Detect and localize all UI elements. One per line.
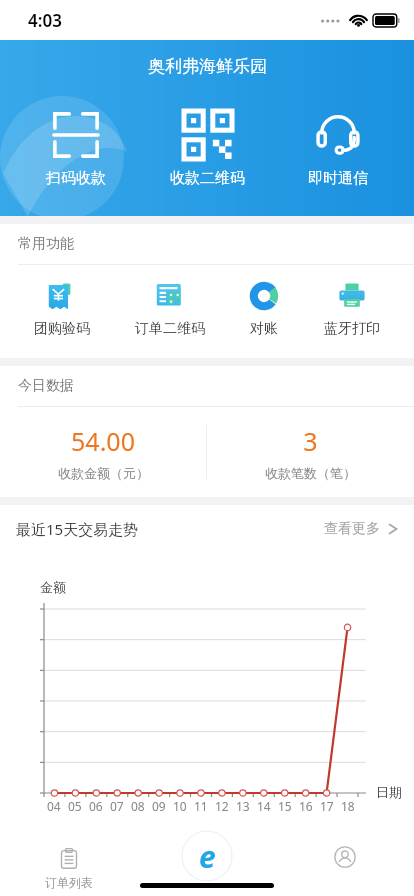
button[interactable]: 3 <box>207 407 414 497</box>
staticText: 扫码收款 <box>46 169 106 188</box>
other: 即时通信 <box>314 111 362 159</box>
button[interactable]: 订单二维码 <box>125 279 215 340</box>
staticText: 09 <box>152 798 166 814</box>
other: 扫码收款 <box>52 111 100 159</box>
other: 收款二维码 <box>184 111 232 159</box>
staticText: 团购验码 <box>34 320 90 338</box>
staticText: 04 <box>47 798 61 814</box>
staticText: 54.00 <box>71 424 135 458</box>
other: 团购验码 <box>47 281 77 311</box>
other: 对账 <box>249 281 279 311</box>
staticText: 10 <box>173 798 187 814</box>
button[interactable]: 收款二维码 <box>152 107 263 192</box>
staticText: 13 <box>236 798 250 814</box>
staticText: 16 <box>299 798 313 814</box>
staticText: 收款二维码 <box>170 169 245 188</box>
staticText: 奥利弗海鲜乐园 <box>148 56 267 77</box>
staticText: 对账 <box>250 320 278 338</box>
staticText: 收款笔数（笔） <box>265 465 356 481</box>
staticText: 收款金额（元） <box>58 465 149 481</box>
staticText: 常用功能 <box>18 235 74 253</box>
button[interactable]: 收钱吧 <box>181 830 233 882</box>
staticText: 4:03 <box>28 9 62 32</box>
staticText: 17 <box>320 798 334 814</box>
staticText: 11 <box>194 798 208 814</box>
staticText: 08 <box>131 798 145 814</box>
other: 订单二维码 <box>155 281 185 311</box>
button[interactable]: 对账 <box>239 279 289 340</box>
staticText: 订单二维码 <box>135 320 205 338</box>
staticText: 15 <box>278 798 292 814</box>
button[interactable]: 即时通信 <box>290 107 386 192</box>
staticText: 订单列表 <box>45 875 93 890</box>
other: 蓝牙打印 <box>337 281 367 311</box>
staticText: 05 <box>68 798 82 814</box>
staticText: 今日数据 <box>18 377 74 395</box>
staticText: 12 <box>215 798 229 814</box>
staticText: 蓝牙打印 <box>324 320 380 338</box>
button[interactable]: 蓝牙打印 <box>314 279 390 340</box>
staticText: 3 <box>303 424 318 458</box>
button[interactable]: 首页 <box>276 838 414 896</box>
button[interactable]: 订单列表 <box>0 838 138 896</box>
staticText: 查看更多 <box>324 520 380 538</box>
staticText: 18 <box>341 798 355 814</box>
button[interactable]: 团购验码 <box>24 279 100 340</box>
staticText: 14 <box>257 798 271 814</box>
staticText: 即时通信 <box>308 169 368 188</box>
staticText: e <box>199 836 216 877</box>
button[interactable]: 扫码收款 <box>28 107 124 192</box>
staticText: 07 <box>110 798 124 814</box>
staticText: 最近15天交易走势 <box>16 519 139 539</box>
button[interactable]: 最近15天交易走势 <box>0 505 414 553</box>
staticText: 06 <box>89 798 103 814</box>
staticText: 金额 <box>40 579 66 595</box>
staticText: 日期 <box>376 784 402 800</box>
button[interactable]: 54.00 <box>0 407 206 497</box>
